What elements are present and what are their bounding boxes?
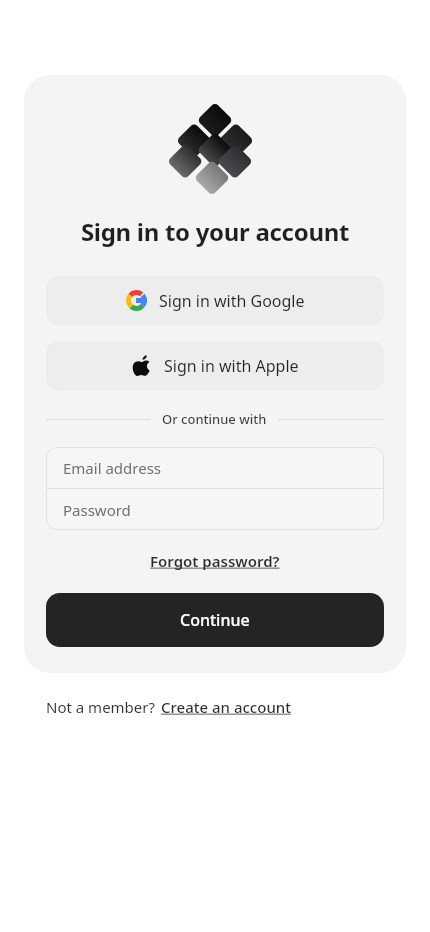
button[interactable]: Email address — [46, 447, 384, 488]
button[interactable]: Forgot password? — [146, 548, 284, 574]
staticText: Password — [63, 500, 131, 520]
staticText: Not a member? — [46, 697, 159, 717]
staticText: Sign in with Apple — [164, 355, 299, 377]
staticText: Create an account — [161, 697, 295, 717]
staticText: Sign in with Google — [159, 290, 305, 312]
button[interactable]: Create an account — [159, 695, 297, 719]
button[interactable]: Password — [46, 489, 384, 530]
staticText: Continue — [180, 609, 250, 631]
staticText: Sign in to your account — [46, 215, 384, 248]
staticText: Forgot password? — [150, 551, 280, 571]
staticText: Or continue with — [162, 410, 267, 428]
button[interactable]: Apple — [46, 341, 384, 390]
other: Google — [126, 290, 147, 311]
button[interactable]: Continue — [46, 593, 384, 647]
staticText: Email address — [63, 458, 162, 478]
other: Apple — [131, 355, 152, 376]
button[interactable]: Google — [46, 276, 384, 325]
